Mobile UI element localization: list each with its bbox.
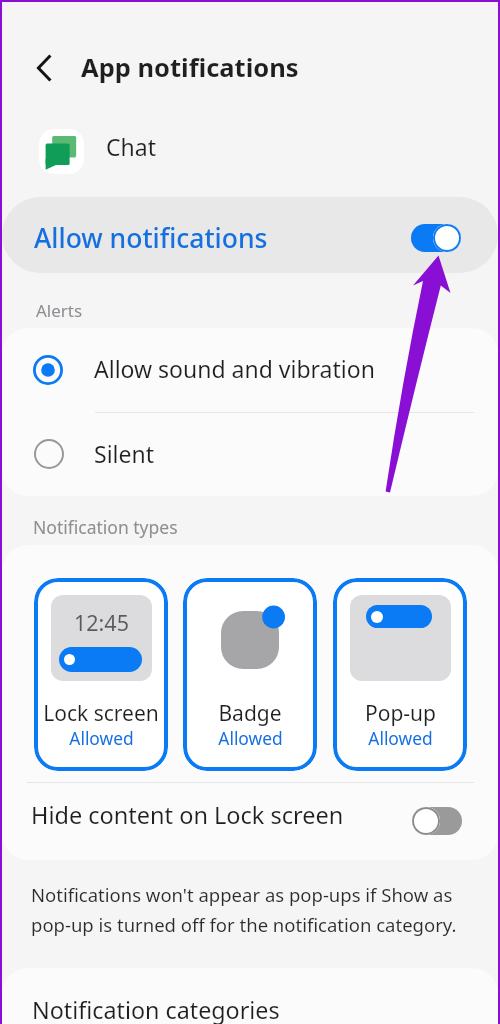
button[interactable]: Hide content on Lock screen bbox=[2, 785, 498, 860]
staticText: Notification types bbox=[33, 515, 178, 539]
staticText: Allow sound and vibration bbox=[94, 353, 375, 384]
staticText: Hide content on Lock screen bbox=[31, 799, 344, 831]
staticText: App notifications bbox=[81, 50, 299, 85]
staticText: Notifications won't appear as pop-ups if… bbox=[31, 882, 463, 937]
staticText: Badge bbox=[218, 699, 282, 728]
button[interactable]: Pop-up bbox=[333, 578, 467, 771]
staticText: Silent bbox=[94, 438, 154, 469]
staticText: Chat bbox=[106, 131, 156, 162]
button[interactable]: Notification categories bbox=[2, 968, 498, 1024]
staticText: Allowed bbox=[368, 726, 433, 750]
button[interactable]: Allow notifications bbox=[2, 197, 498, 273]
staticText: Alerts bbox=[36, 299, 83, 322]
staticText: Lock screen bbox=[43, 699, 159, 728]
staticText: Allow notifications bbox=[34, 220, 268, 256]
staticText: Allowed bbox=[218, 726, 283, 750]
staticText: 12:45 bbox=[74, 608, 129, 637]
staticText: Allowed bbox=[69, 726, 134, 750]
button[interactable]: Hide content toggle bbox=[412, 807, 462, 835]
button[interactable]: Allow notifications toggle bbox=[411, 224, 461, 252]
button[interactable]: 12:45 bbox=[34, 578, 168, 771]
button[interactable]: Badge bbox=[183, 578, 317, 771]
staticText: Notification categories bbox=[32, 994, 280, 1024]
button[interactable]: Allow sound and vibration bbox=[2, 328, 498, 411]
staticText: Pop-up bbox=[365, 699, 436, 728]
button[interactable]: Back bbox=[23, 47, 65, 89]
button[interactable]: Silent bbox=[2, 413, 498, 496]
